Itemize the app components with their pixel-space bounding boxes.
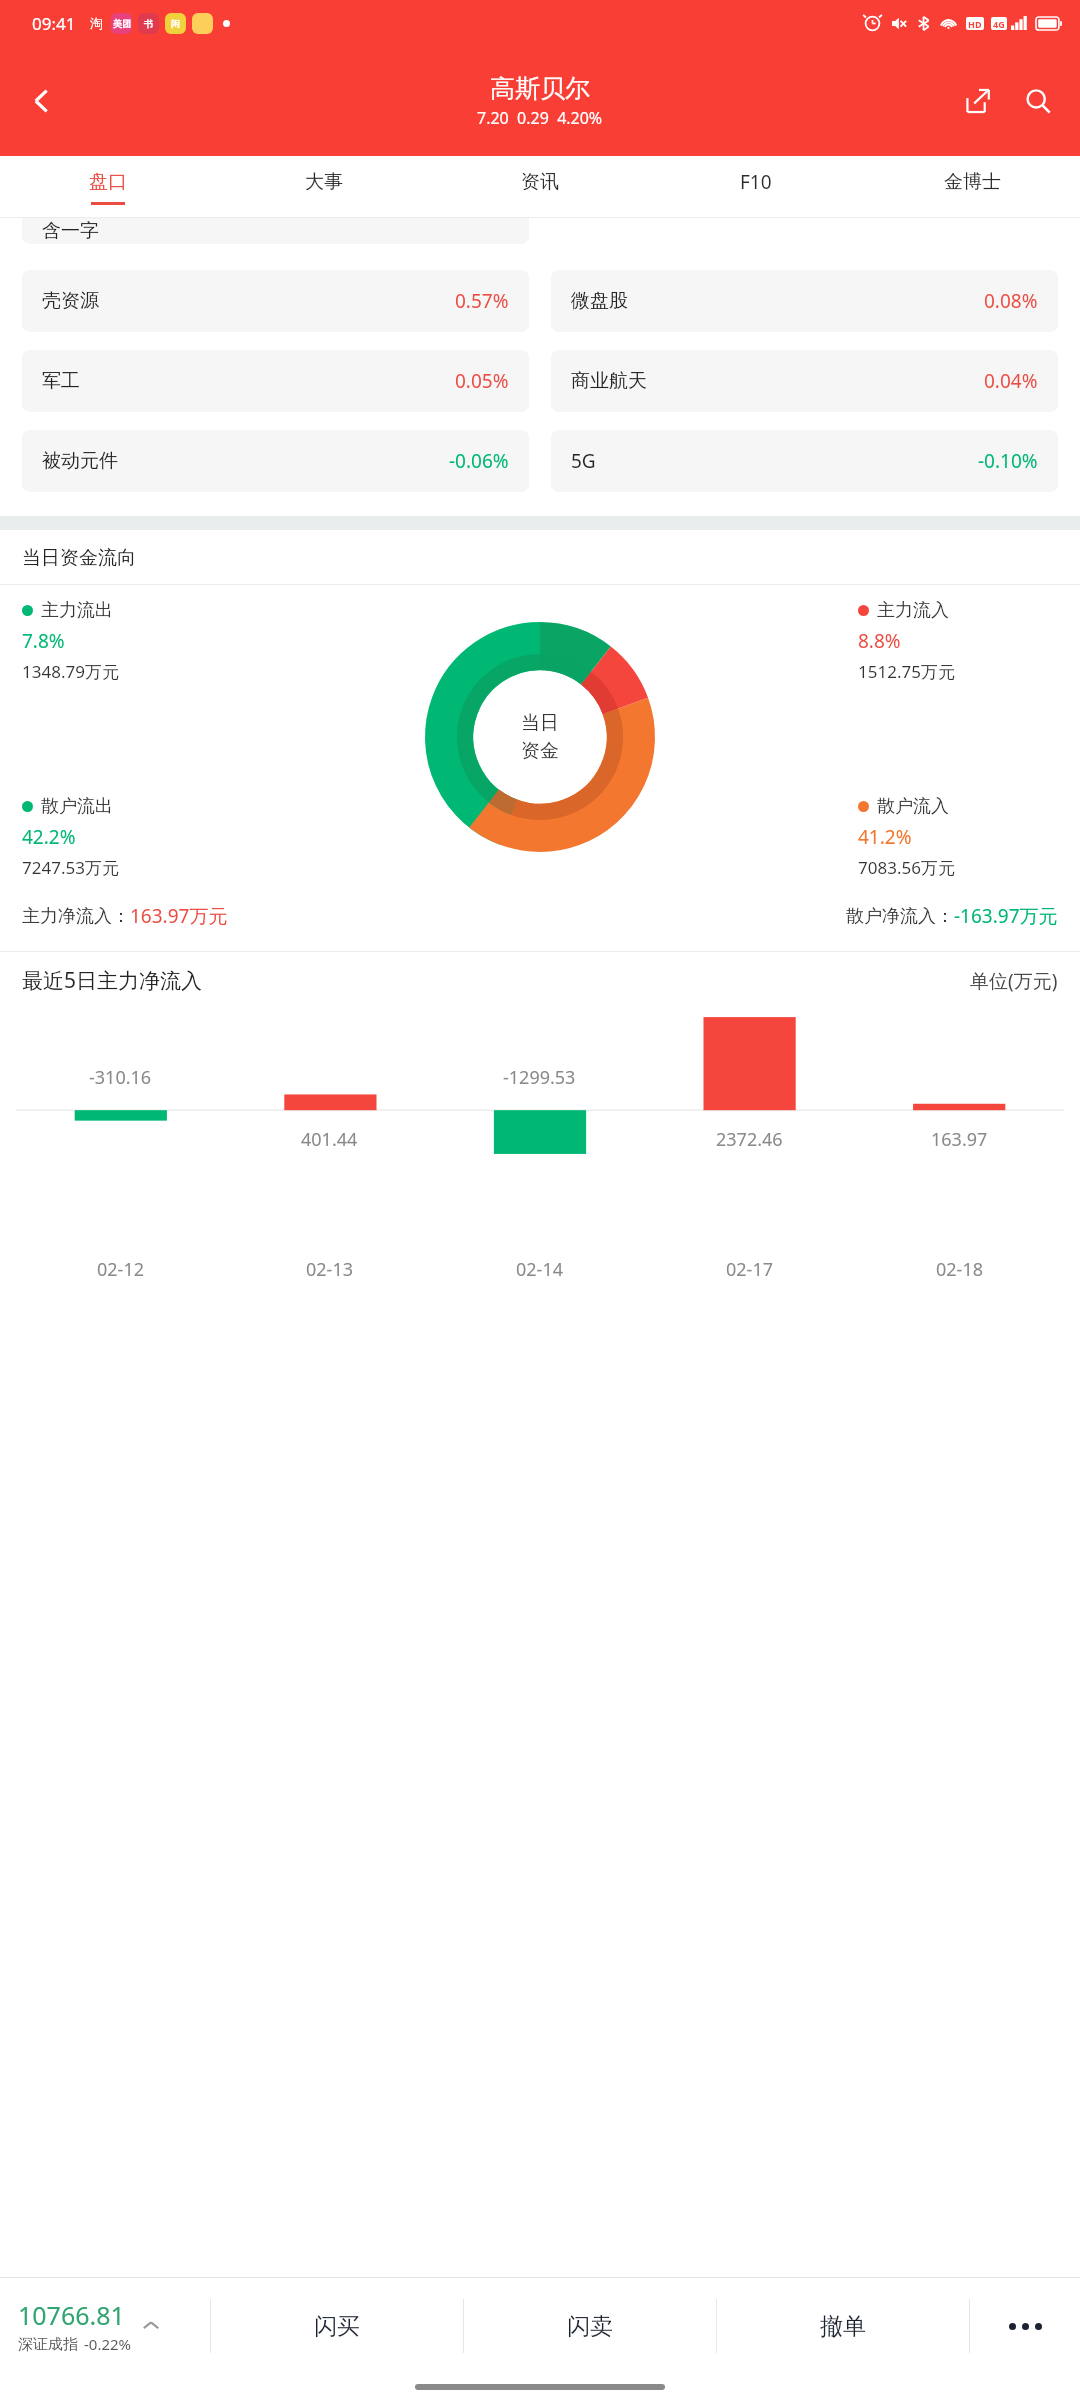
staticText: -0.06% (449, 448, 509, 474)
staticText: 4G (993, 18, 1005, 30)
staticText: -0.22% (84, 2334, 132, 2354)
staticText: 当日 (521, 711, 559, 735)
staticText: 散户流出 (41, 795, 113, 818)
staticText: 壳资源 (42, 289, 99, 313)
staticText: 商业航天 (571, 369, 647, 393)
staticText: 02-14 (516, 1257, 563, 1282)
button[interactable]: 10766.81 (0, 2278, 210, 2374)
staticText: 7247.53万元 (22, 856, 119, 879)
button[interactable]: Share (952, 75, 1004, 127)
staticText: 163.97万元 (130, 903, 228, 929)
staticText: 1348.79万元 (22, 660, 119, 683)
staticText: 2372.46 (716, 1127, 783, 1152)
staticText: 微盘股 (571, 289, 628, 313)
staticText: F10 (740, 169, 772, 195)
button[interactable]: 壳资源 (22, 270, 529, 332)
staticText: 闪买 (314, 2312, 360, 2341)
staticText: 7083.56万元 (858, 856, 955, 879)
staticText: 8.8% (858, 628, 901, 654)
staticText: 散户净流入： (846, 905, 954, 928)
staticText: 02-13 (306, 1257, 353, 1282)
button[interactable]: Search (1012, 75, 1064, 127)
button[interactable]: 大事 (216, 156, 432, 218)
staticText: 0.05% (455, 368, 509, 394)
staticText: 大事 (305, 170, 343, 194)
button[interactable]: 含一字 (22, 218, 529, 244)
staticText: 军工 (42, 369, 80, 393)
staticText: 41.2% (858, 824, 912, 850)
button[interactable]: 商业航天 (551, 350, 1058, 412)
staticText: -163.97万元 (954, 903, 1058, 929)
button[interactable]: 盘口 (0, 156, 216, 218)
staticText: 02-17 (726, 1257, 773, 1282)
staticText: 主力流出 (41, 599, 113, 622)
staticText: -1299.53 (503, 1065, 576, 1090)
button[interactable]: 闪买 (211, 2278, 463, 2374)
staticText: 当日资金流向 (22, 546, 136, 570)
staticText: 书 (144, 18, 153, 29)
staticText: 0.57% (455, 288, 509, 314)
staticText: 金博士 (944, 170, 1001, 194)
staticText: HD (968, 18, 982, 30)
staticText: 5G (571, 448, 596, 474)
button[interactable]: 军工 (22, 350, 529, 412)
staticText: 美团 (113, 18, 131, 29)
staticText: 盘口 (89, 170, 127, 194)
staticText: 10766.81 (18, 2298, 125, 2332)
button[interactable]: F10 (648, 156, 864, 218)
staticText: 散户流入 (877, 795, 949, 818)
staticText: 163.97 (931, 1127, 988, 1152)
staticText: 主力流入 (877, 599, 949, 622)
button[interactable]: 资讯 (432, 156, 648, 218)
staticText: 深证成指 (18, 2335, 78, 2354)
staticText: 撤单 (820, 2312, 866, 2341)
staticText: 资讯 (521, 170, 559, 194)
button[interactable]: 5G (551, 430, 1058, 492)
staticText: 09:41 (32, 12, 76, 35)
button[interactable]: 撤单 (717, 2278, 969, 2374)
staticText: 被动元件 (42, 449, 118, 473)
staticText: 02-18 (936, 1257, 983, 1282)
button[interactable]: 被动元件 (22, 430, 529, 492)
button[interactable]: 金博士 (864, 156, 1080, 218)
staticText: 1512.75万元 (858, 660, 955, 683)
staticText: 资金 (521, 739, 559, 763)
button[interactable]: 闪卖 (464, 2278, 716, 2374)
staticText: 42.2% (22, 824, 76, 850)
button[interactable]: More (970, 2278, 1080, 2374)
staticText: 401.44 (301, 1127, 358, 1152)
staticText: 闪卖 (567, 2312, 613, 2341)
button[interactable]: 微盘股 (551, 270, 1058, 332)
staticText: 最近5日主力净流入 (22, 966, 203, 995)
staticText: 主力净流入： (22, 905, 130, 928)
staticText: 0.08% (984, 288, 1038, 314)
staticText: 闲 (171, 18, 180, 29)
staticText: -310.16 (89, 1065, 152, 1090)
staticText: 02-12 (97, 1257, 144, 1282)
staticText: -0.10% (978, 448, 1038, 474)
staticText: 含一字 (42, 219, 99, 243)
staticText: 高斯贝尔 (490, 73, 590, 104)
button[interactable]: Back (14, 73, 70, 129)
staticText: 单位(万元) (970, 968, 1058, 994)
staticText: 淘 (90, 15, 103, 31)
staticText: 7.8% (22, 628, 65, 654)
staticText: 0.04% (984, 368, 1038, 394)
staticText: 7.20 0.29 4.20% (477, 107, 603, 129)
